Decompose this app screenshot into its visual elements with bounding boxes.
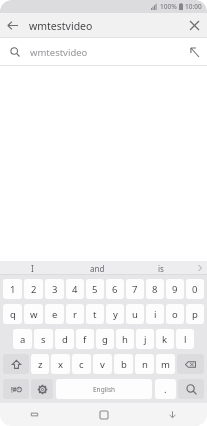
button[interactable]: r [66,304,84,324]
staticText: d [62,333,68,346]
button[interactable]: is [129,261,193,275]
staticText: 2 [31,283,37,296]
button[interactable]: 9 [166,279,184,299]
button[interactable]: z [31,354,49,374]
staticText: p [192,308,198,321]
button[interactable]: 8 [146,279,164,299]
staticText: English [93,385,116,394]
button[interactable]: u [126,304,144,324]
button[interactable]: j [136,329,154,349]
button[interactable]: Search [178,379,204,399]
button[interactable]: . [155,379,176,399]
button[interactable]: x [51,354,70,374]
button[interactable]: English [56,379,152,399]
button[interactable]: k [156,329,174,349]
button[interactable]: t [86,304,104,324]
staticText: r [73,308,77,321]
button[interactable]: More suggestions [193,261,207,275]
staticText: x [58,358,64,371]
staticText: wmtestvideo [30,46,181,59]
staticText: j [144,333,147,346]
button[interactable]: p [186,304,204,324]
button[interactable]: Home [69,403,138,426]
staticText: b [121,358,127,371]
staticText: t [93,308,97,321]
staticText: m [161,358,170,371]
staticText: wmtestvideo [29,19,182,33]
button[interactable]: Shift [3,354,29,374]
staticText: c [79,358,84,371]
button[interactable]: w [24,304,43,324]
button[interactable]: h [116,329,134,349]
button[interactable]: i [146,304,164,324]
staticText: 9 [172,283,178,296]
button[interactable]: o [166,304,184,324]
staticText: k [162,333,168,346]
staticText: 8 [152,283,158,296]
staticText: z [38,358,43,371]
staticText: l [184,333,187,346]
staticText: 10:00 [185,2,202,11]
button[interactable]: n [135,354,154,374]
staticText: y [113,308,118,321]
button[interactable]: Symbols [3,379,29,399]
staticText: q [10,308,16,321]
button[interactable]: d [55,329,74,349]
staticText: a [20,333,26,346]
button[interactable]: 3 [45,279,64,299]
staticText: u [132,308,138,321]
staticText: v [100,358,105,371]
button[interactable]: Hide keyboard [138,403,207,426]
button[interactable]: s [34,329,53,349]
staticText: w [30,308,38,321]
button[interactable]: m [156,354,175,374]
staticText: is [158,263,164,274]
staticText: 100% [160,2,177,11]
button[interactable]: and [65,261,129,275]
staticText: f [83,333,87,346]
button[interactable]: c [72,354,91,374]
staticText: s [41,333,46,346]
staticText: 5 [92,283,98,296]
button[interactable]: g [96,329,114,349]
button[interactable]: 1 [3,279,22,299]
button[interactable]: 7 [126,279,144,299]
button[interactable]: wmtestvideo [0,38,207,66]
button[interactable]: Keyboard settings [31,379,53,399]
staticText: i [154,308,157,321]
button[interactable]: f [76,329,94,349]
staticText: 7 [132,283,138,296]
button[interactable]: 5 [86,279,104,299]
button[interactable]: y [106,304,124,324]
button[interactable]: v [93,354,112,374]
staticText: 0 [192,283,198,296]
staticText: . [164,383,167,396]
button[interactable]: e [45,304,64,324]
button[interactable]: Back [0,13,25,38]
staticText: 1 [10,283,16,296]
button[interactable]: 6 [106,279,124,299]
staticText: I [31,263,34,274]
button[interactable]: q [3,304,22,324]
staticText: 6 [112,283,118,296]
button[interactable]: a [13,329,32,349]
button[interactable]: 0 [186,279,204,299]
staticText: n [142,358,148,371]
staticText: e [52,308,58,321]
button[interactable]: Recents [0,403,69,426]
button[interactable]: Clear [182,13,207,38]
button[interactable]: 4 [66,279,84,299]
button[interactable]: l [176,329,194,349]
button[interactable]: b [114,354,133,374]
button[interactable]: 2 [24,279,43,299]
staticText: h [122,333,128,346]
staticText: 4 [72,283,78,296]
button[interactable]: Backspace [177,354,204,374]
staticText: g [102,333,108,346]
button[interactable]: I [0,261,65,275]
staticText: 3 [52,283,58,296]
staticText: and [90,263,105,274]
staticText: o [172,308,178,321]
